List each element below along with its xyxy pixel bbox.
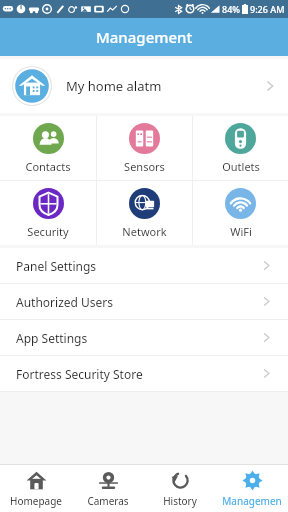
staticText: Outlets [222, 159, 260, 174]
staticText: Management [96, 27, 193, 47]
staticText: Panel Settings [16, 258, 97, 274]
button[interactable]: Fortress Security Store [0, 356, 288, 391]
staticText: Network [122, 224, 167, 239]
button[interactable]: My home alatm [0, 59, 288, 113]
staticText: Sensors [124, 159, 165, 174]
staticText: Security [27, 224, 69, 239]
button[interactable]: Outlets [193, 116, 288, 180]
staticText: Managemen [222, 494, 282, 508]
button[interactable]: Authorized Users [0, 284, 288, 319]
staticText: Homepage [10, 494, 62, 508]
button[interactable]: WiFi [193, 181, 288, 245]
staticText: Fortress Security Store [16, 366, 143, 382]
staticText: History [163, 494, 197, 508]
staticText: Authorized Users [16, 294, 114, 310]
button[interactable]: App Settings [0, 320, 288, 355]
button[interactable]: History [144, 465, 216, 512]
button[interactable]: Security [0, 181, 96, 245]
button[interactable]: Panel Settings [0, 248, 288, 283]
button[interactable]: Sensors [97, 116, 192, 180]
staticText: Contacts [25, 159, 71, 174]
button[interactable]: Contacts [0, 116, 96, 180]
button[interactable]: Cameras [72, 465, 144, 512]
button[interactable]: Network [97, 181, 192, 245]
staticText: App Settings [16, 330, 88, 346]
staticText: 9:26 AM [250, 3, 285, 15]
button[interactable]: Homepage [0, 465, 72, 512]
staticText: 84% [222, 3, 240, 15]
staticText: My home alatm [66, 77, 162, 95]
button[interactable]: Managemen [216, 465, 288, 512]
staticText: Cameras [87, 494, 129, 508]
staticText: WiFi [230, 224, 252, 239]
